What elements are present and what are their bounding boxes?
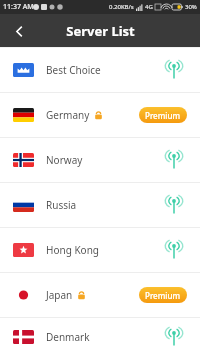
- button[interactable]: Denmark: [0, 318, 200, 355]
- button[interactable]: Best Choice: [0, 48, 200, 92]
- button[interactable]: Premium: [139, 107, 187, 123]
- button[interactable]: Connect: [161, 324, 187, 350]
- staticText: Norway: [46, 153, 83, 167]
- staticText: Hong Kong: [46, 243, 99, 257]
- staticText: 11:37 AM: [3, 2, 34, 12]
- button[interactable]: Norway: [0, 138, 200, 182]
- staticText: Denmark: [46, 330, 90, 344]
- staticText: Germany: [46, 108, 90, 122]
- button[interactable]: Connect: [161, 192, 187, 218]
- staticText: 4G: [145, 3, 153, 11]
- staticText: Premium: [145, 290, 181, 301]
- button[interactable]: Japan: [0, 273, 200, 317]
- button[interactable]: Premium: [139, 287, 187, 303]
- button[interactable]: Connect: [161, 237, 187, 263]
- staticText: 30%: [185, 3, 197, 11]
- button[interactable]: Russia: [0, 183, 200, 227]
- staticText: Best Choice: [46, 63, 101, 77]
- button[interactable]: Germany: [0, 93, 200, 137]
- staticText: Japan: [46, 288, 73, 302]
- button[interactable]: Hong Kong: [0, 228, 200, 272]
- staticText: Russia: [46, 198, 77, 212]
- staticText: Premium: [145, 110, 181, 121]
- staticText: 0.20KB/s: [109, 3, 134, 11]
- staticText: Server List: [66, 22, 135, 40]
- button[interactable]: Back: [6, 18, 32, 44]
- button[interactable]: Connect: [161, 147, 187, 173]
- button[interactable]: Connect: [161, 57, 187, 83]
